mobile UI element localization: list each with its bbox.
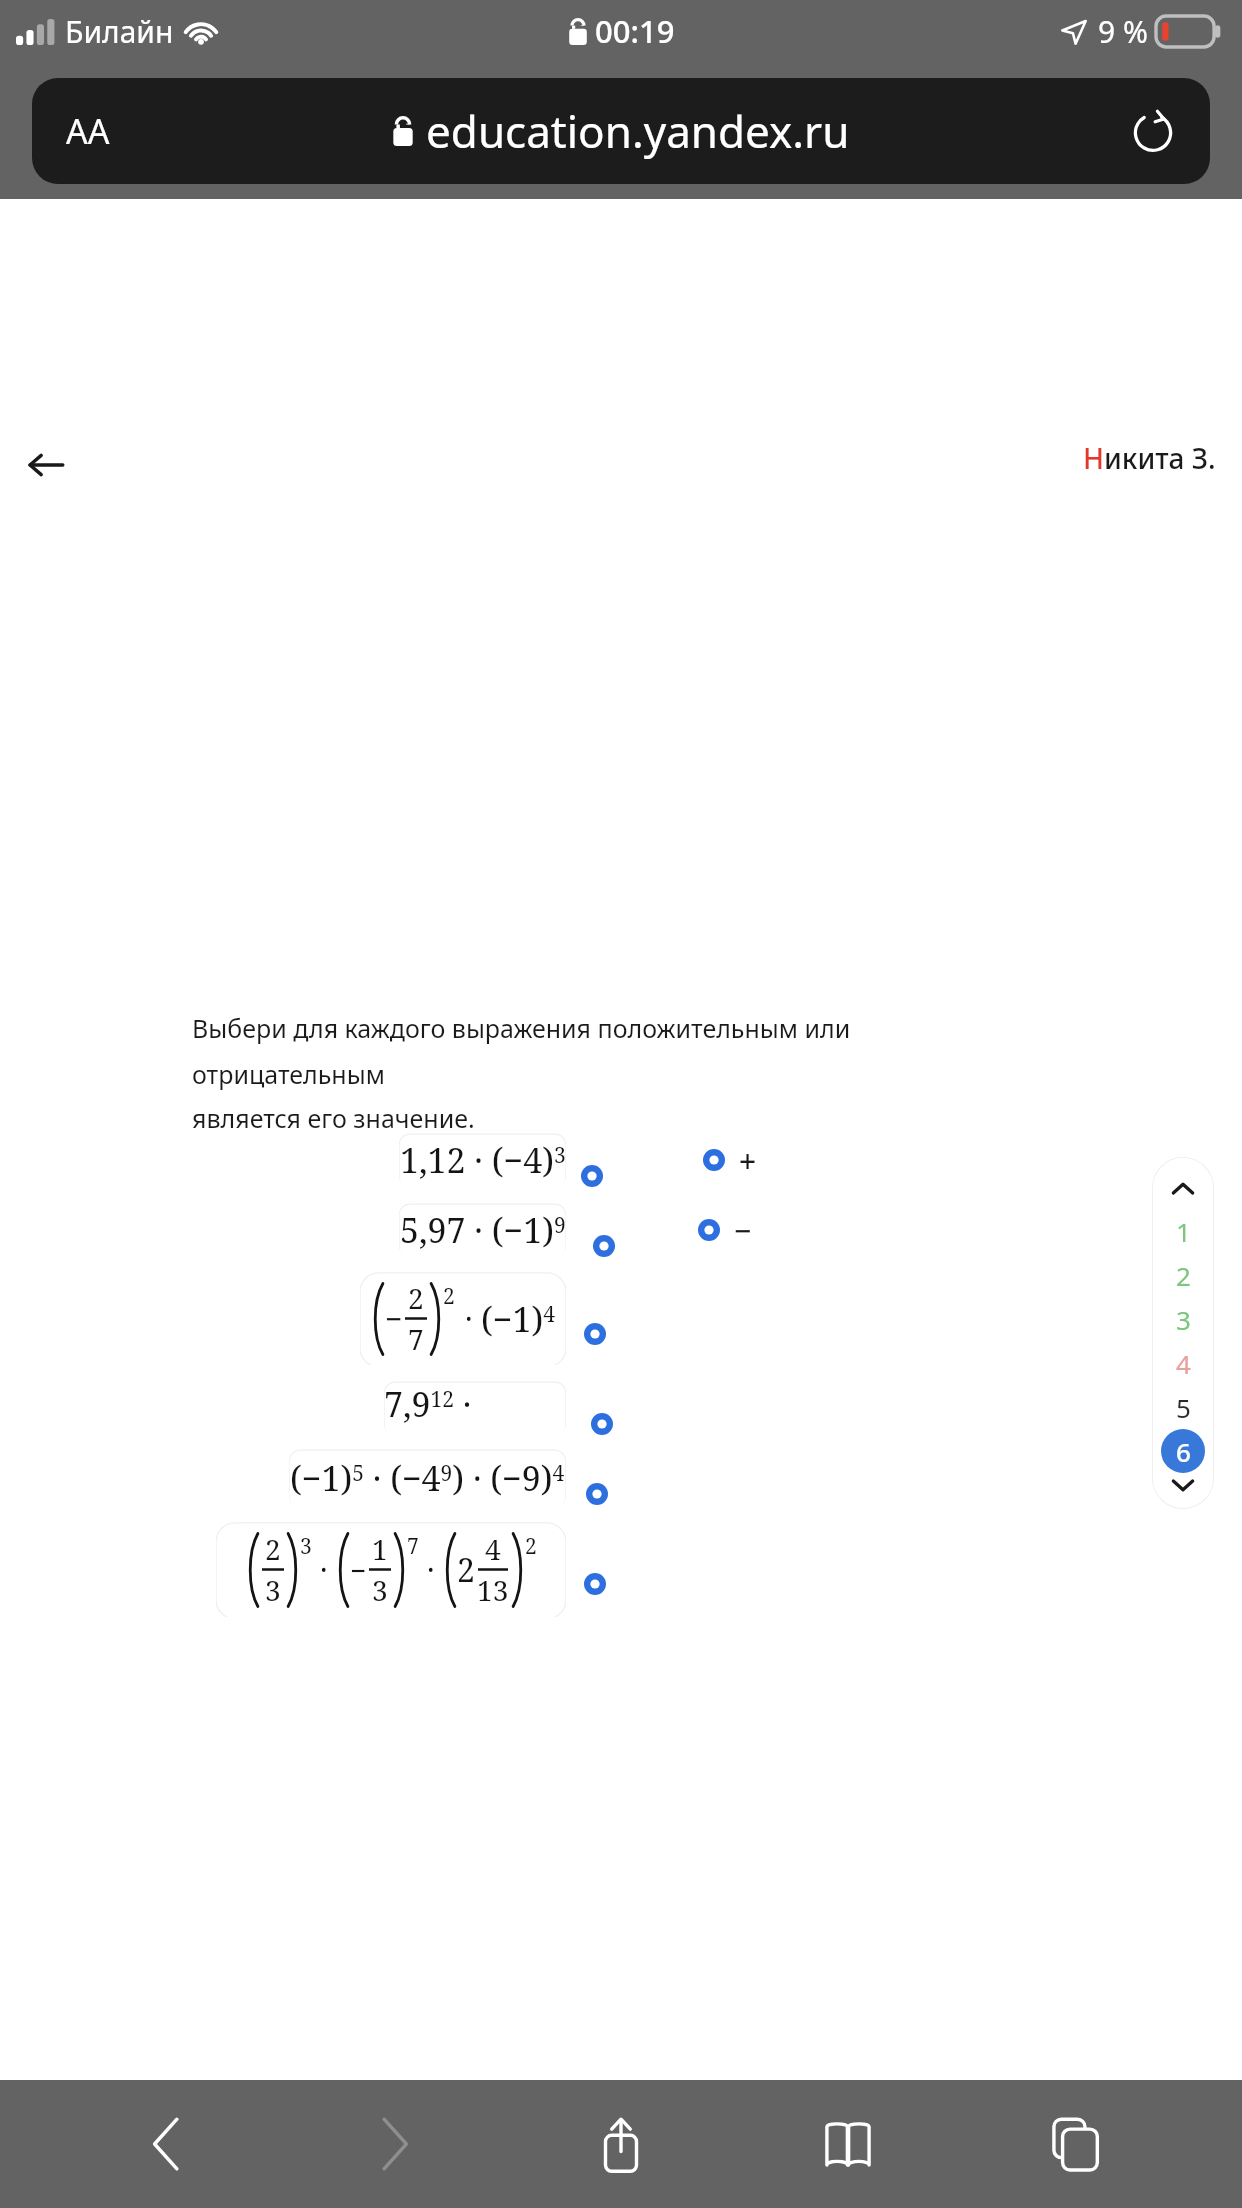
button[interactable]: Option + (697, 1143, 731, 1177)
button[interactable]: Connector (578, 1317, 612, 1351)
staticText: 4 (485, 1530, 501, 1568)
staticText: 7,912 · (−1,2) (384, 1381, 566, 1435)
button[interactable]: 2 (1161, 1253, 1205, 1297)
button[interactable]: − (707, 1203, 759, 1257)
staticText: (−1)4 (481, 1296, 555, 1342)
staticText: 2 (443, 1282, 455, 1311)
button[interactable]: Connector (585, 1407, 619, 1441)
staticText: Выбери для каждого выражения положительн… (192, 1011, 992, 1091)
staticText: 1,12 · (−4)3 (400, 1137, 566, 1183)
button[interactable]: АА (32, 78, 1210, 184)
button[interactable]: 2 (216, 1521, 566, 1617)
staticText: 00:19 (595, 10, 675, 52)
staticText: Билайн (65, 11, 174, 52)
button[interactable]: Connector (578, 1567, 612, 1601)
button[interactable]: Forward (334, 2094, 454, 2194)
button[interactable]: Back (107, 2094, 227, 2194)
staticText: 2 (1176, 1258, 1191, 1293)
staticText: 13 (477, 1571, 509, 1609)
button[interactable]: 7,912 · (−1,2) (384, 1381, 566, 1435)
button[interactable]: Back (8, 427, 84, 503)
staticText: 6 (1176, 1434, 1191, 1469)
staticText: 5 (1176, 1390, 1191, 1425)
staticText: 3 (265, 1571, 281, 1609)
staticText: 3 (300, 1532, 312, 1561)
staticText: 2 (265, 1530, 281, 1568)
staticText: · (427, 1549, 435, 1590)
staticText: education.yandex.ru (426, 101, 850, 161)
button[interactable]: 6 (1161, 1429, 1205, 1473)
staticText: 9 % (1098, 11, 1148, 52)
button[interactable]: Tabs (1015, 2094, 1135, 2194)
staticText: · (320, 1549, 328, 1590)
staticText: · (465, 1298, 473, 1339)
button[interactable]: Connector (580, 1477, 614, 1511)
staticText: является его значение. (192, 1101, 475, 1135)
button[interactable]: 1 (1161, 1209, 1205, 1253)
button[interactable]: Reload (1124, 102, 1182, 160)
button[interactable]: 5,97 · (−1)9 (399, 1203, 566, 1257)
button[interactable]: 1,12 · (−4)3 (399, 1133, 566, 1187)
button[interactable]: Share (561, 2094, 681, 2194)
button[interactable]: Option − (692, 1213, 726, 1247)
staticText: − (734, 1210, 752, 1251)
button[interactable]: (−1)5 · (−49) · (−9)4 (289, 1449, 566, 1507)
button[interactable]: 4 (1161, 1341, 1205, 1385)
button[interactable]: Connector (587, 1229, 621, 1263)
button[interactable]: Никита З. (1083, 439, 1216, 477)
staticText: 1 (1176, 1214, 1191, 1249)
staticText: 3 (1176, 1302, 1191, 1337)
button[interactable]: Bookmarks (788, 2094, 908, 2194)
button[interactable]: Previous (1163, 1169, 1203, 1209)
staticText: 1 (372, 1530, 388, 1568)
staticText: АА (66, 108, 110, 154)
staticText: 7 (408, 1320, 424, 1358)
button[interactable]: + (712, 1133, 764, 1187)
staticText: Никита З. (1083, 439, 1216, 477)
staticText: 2 (408, 1279, 424, 1317)
button[interactable]: 5 (1161, 1385, 1205, 1429)
staticText: 3 (372, 1571, 388, 1609)
staticText: 7 (407, 1532, 419, 1561)
staticText: 4 (1176, 1346, 1191, 1381)
button[interactable]: Connector (575, 1159, 609, 1193)
staticText: + (739, 1140, 757, 1181)
staticText: 5,97 · (−1)9 (400, 1207, 566, 1253)
button[interactable]: 3 (1161, 1297, 1205, 1341)
staticText: 2 (525, 1532, 537, 1561)
button[interactable]: Next (1163, 1473, 1203, 1497)
staticText: 2 (457, 1548, 475, 1592)
staticText: (−1)5 · (−49) · (−9)4 (290, 1455, 565, 1501)
staticText: − (350, 1551, 367, 1589)
staticText: − (385, 1298, 403, 1339)
button[interactable]: − (360, 1271, 566, 1365)
